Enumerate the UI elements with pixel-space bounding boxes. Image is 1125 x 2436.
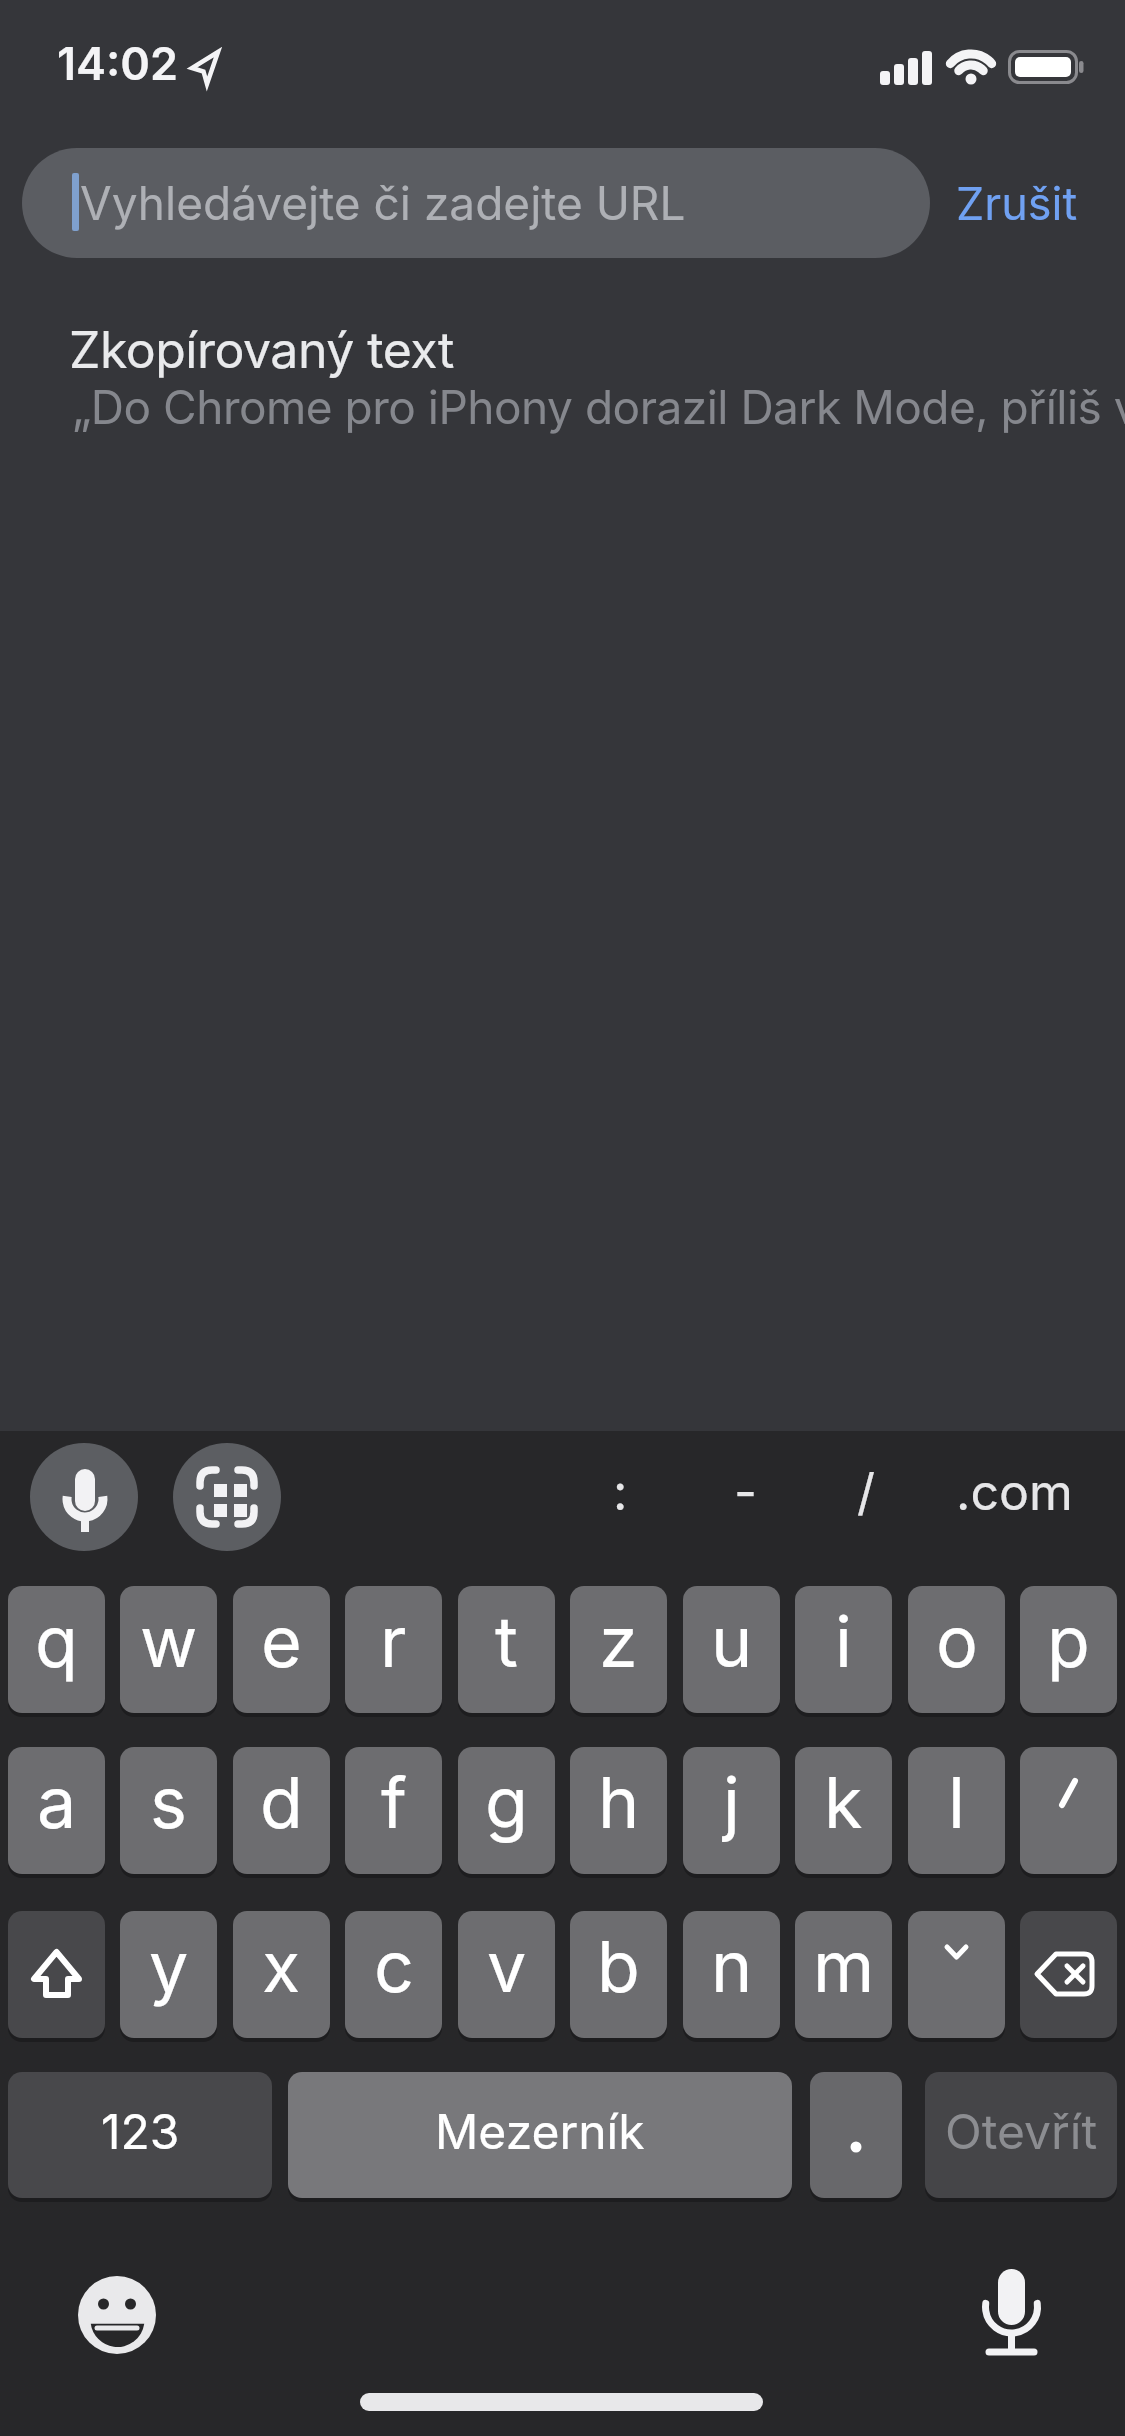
button[interactable]: w xyxy=(120,1586,217,1713)
button[interactable]: t xyxy=(458,1586,555,1713)
staticText: Mezerník xyxy=(435,2102,645,2160)
button[interactable]: o xyxy=(908,1586,1005,1713)
staticText: k xyxy=(824,1760,863,1845)
button[interactable] xyxy=(908,1911,1005,2038)
button[interactable]: j xyxy=(683,1747,780,1874)
staticText: Vyhledávejte či zadejte URL xyxy=(80,175,686,231)
button[interactable] xyxy=(173,1443,281,1551)
staticText: - xyxy=(734,1462,757,1522)
staticText: f xyxy=(381,1760,407,1845)
staticText: „Do Chrome pro iPhony dorazil Dark Mode,… xyxy=(72,379,1125,435)
staticText: v xyxy=(487,1924,527,2009)
button[interactable]: .com xyxy=(944,1443,1084,1551)
button[interactable]: b xyxy=(570,1911,667,2038)
button[interactable]: v xyxy=(458,1911,555,2038)
button[interactable] xyxy=(975,2262,1047,2362)
staticText: .com xyxy=(956,1462,1073,1522)
button[interactable]: 123 xyxy=(8,2072,272,2198)
button[interactable]: m xyxy=(795,1911,892,2038)
button[interactable]: : xyxy=(590,1443,650,1551)
button[interactable]: u xyxy=(683,1586,780,1713)
staticText: y xyxy=(149,1924,189,2009)
button[interactable]: i xyxy=(795,1586,892,1713)
button[interactable]: / xyxy=(836,1443,896,1551)
button[interactable] xyxy=(810,2072,902,2198)
button[interactable] xyxy=(1020,1911,1117,2038)
staticText: c xyxy=(374,1924,414,2009)
button[interactable]: z xyxy=(570,1586,667,1713)
staticText: Otevřít xyxy=(945,2102,1098,2160)
button[interactable] xyxy=(30,1443,138,1551)
button[interactable]: y xyxy=(120,1911,217,2038)
staticText: Zrušit xyxy=(956,176,1078,230)
button[interactable]: r xyxy=(345,1586,442,1713)
button[interactable]: k xyxy=(795,1747,892,1874)
button[interactable]: Mezerník xyxy=(288,2072,792,2198)
staticText: q xyxy=(35,1599,78,1684)
staticText: r xyxy=(380,1599,407,1684)
staticText: e xyxy=(261,1599,302,1684)
staticText: s xyxy=(150,1760,187,1845)
staticText: b xyxy=(597,1924,640,2009)
staticText: n xyxy=(711,1924,753,2009)
staticText: z xyxy=(599,1599,638,1684)
button[interactable]: e xyxy=(233,1586,330,1713)
staticText: a xyxy=(37,1760,77,1845)
button[interactable]: Zrušit xyxy=(937,148,1097,258)
staticText: j xyxy=(723,1760,740,1845)
staticText: h xyxy=(598,1760,640,1845)
staticText: p xyxy=(1047,1599,1090,1684)
button[interactable]: l xyxy=(908,1747,1005,1874)
staticText: 123 xyxy=(101,2102,180,2160)
button[interactable]: p xyxy=(1020,1586,1117,1713)
button[interactable]: d xyxy=(233,1747,330,1874)
button[interactable] xyxy=(1020,1747,1117,1874)
button[interactable]: s xyxy=(120,1747,217,1874)
button[interactable]: n xyxy=(683,1911,780,2038)
staticText: x xyxy=(262,1924,301,2009)
button[interactable]: g xyxy=(458,1747,555,1874)
button[interactable]: - xyxy=(715,1443,775,1551)
staticText: o xyxy=(936,1599,978,1684)
button[interactable]: Otevřít xyxy=(925,2072,1117,2198)
staticText: m xyxy=(813,1924,875,2009)
button[interactable]: a xyxy=(8,1747,105,1874)
staticText: Zkopírovaný text xyxy=(69,320,454,380)
button[interactable] xyxy=(8,1911,105,2038)
button[interactable] xyxy=(78,2276,156,2354)
button[interactable]: h xyxy=(570,1747,667,1874)
staticText: : xyxy=(613,1462,628,1522)
staticText: t xyxy=(495,1599,518,1684)
staticText: g xyxy=(485,1760,528,1845)
button[interactable]: q xyxy=(8,1586,105,1713)
staticText: / xyxy=(857,1462,876,1522)
button[interactable]: Zkopírovaný text xyxy=(69,315,1069,385)
button[interactable] xyxy=(22,148,930,258)
staticText: u xyxy=(711,1599,753,1684)
staticText: i xyxy=(835,1599,852,1684)
button[interactable]: f xyxy=(345,1747,442,1874)
staticText: d xyxy=(260,1760,303,1845)
staticText: 14:02 xyxy=(57,36,179,90)
button[interactable]: c xyxy=(345,1911,442,2038)
staticText: w xyxy=(140,1599,198,1684)
button[interactable]: x xyxy=(233,1911,330,2038)
staticText: l xyxy=(948,1760,965,1845)
